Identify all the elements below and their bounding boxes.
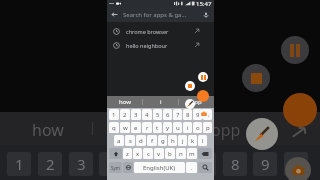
button[interactable]: y	[163, 122, 172, 133]
staticText: s	[129, 137, 132, 145]
staticText: 4	[107, 154, 116, 174]
staticText: j	[182, 137, 184, 145]
button[interactable]: Record	[197, 90, 209, 102]
button[interactable]: how	[107, 96, 142, 108]
staticText: 9	[261, 154, 270, 174]
button[interactable]: c	[143, 148, 153, 159]
button[interactable]: r	[142, 122, 152, 133]
staticText: 4	[145, 111, 149, 119]
staticText: 8	[231, 154, 240, 174]
button[interactable]: w	[120, 122, 130, 133]
staticText: Search for apps & ga...	[123, 11, 187, 19]
button[interactable]: l	[198, 135, 207, 146]
button[interactable]: Stop recording	[185, 81, 195, 91]
staticText: 0	[292, 154, 301, 174]
button[interactable]: Search	[198, 162, 212, 173]
staticText: 7	[176, 111, 180, 119]
button[interactable]: 0	[203, 109, 212, 120]
button[interactable]: f	[147, 135, 157, 146]
button[interactable]: 6	[163, 109, 172, 120]
button[interactable]: h	[168, 135, 177, 146]
button[interactable]: .	[186, 162, 197, 173]
staticText: b	[168, 150, 172, 158]
button[interactable]: x	[133, 148, 142, 159]
button[interactable]: Sym	[109, 162, 122, 173]
staticText: i	[160, 98, 162, 106]
staticText: n	[179, 150, 183, 158]
staticText: 7	[200, 154, 209, 174]
button[interactable]: 1	[109, 109, 119, 120]
button[interactable]: 4	[142, 109, 152, 120]
staticText: a	[117, 137, 121, 145]
button[interactable]: n	[176, 148, 186, 159]
button[interactable]: e	[131, 122, 141, 133]
staticText: t	[156, 124, 159, 132]
button[interactable]: 3	[131, 109, 141, 120]
staticText: v	[157, 150, 161, 158]
button[interactable]: app	[179, 96, 214, 108]
button[interactable]: u	[173, 122, 182, 133]
staticText: 5	[156, 111, 160, 119]
staticText: 6	[169, 154, 178, 174]
button[interactable]: t	[153, 122, 162, 133]
button[interactable]: 7	[173, 109, 182, 120]
button[interactable]: d	[136, 135, 146, 146]
button[interactable]: j	[178, 135, 187, 146]
other: Search	[202, 164, 209, 171]
staticText: 2	[46, 154, 55, 174]
button[interactable]: g	[158, 135, 167, 146]
staticText: q	[112, 124, 116, 132]
button[interactable]: Pause recording	[198, 72, 208, 82]
button[interactable]: hello neighbour	[107, 38, 214, 52]
staticText: .	[191, 164, 193, 172]
button[interactable]: p	[203, 122, 212, 133]
button[interactable]: z	[123, 148, 132, 159]
button[interactable]: Screenshot	[199, 109, 209, 119]
other: Back	[111, 11, 118, 18]
staticText: app	[191, 98, 202, 106]
button[interactable]: Backspace	[198, 148, 212, 159]
staticText: 2	[123, 111, 127, 119]
button[interactable]: v	[154, 148, 164, 159]
button[interactable]: m	[187, 148, 197, 159]
button[interactable]: Back	[107, 7, 214, 22]
staticText: 9	[196, 111, 200, 119]
button[interactable]: Draw	[185, 99, 195, 109]
staticText: o	[196, 124, 200, 132]
staticText: 6	[166, 111, 170, 119]
button[interactable]: a	[114, 135, 124, 146]
staticText: p	[206, 124, 210, 132]
staticText: 1	[15, 154, 24, 174]
staticText: c	[147, 150, 150, 158]
staticText: how	[32, 119, 64, 141]
button[interactable]: Shift	[109, 148, 122, 159]
other: Change language	[126, 165, 131, 170]
staticText: 5	[138, 154, 147, 174]
staticText: English(UK)	[143, 164, 176, 172]
staticText: i	[187, 124, 189, 132]
button[interactable]: i	[143, 96, 178, 108]
button[interactable]: 5	[153, 109, 162, 120]
button[interactable]: q	[109, 122, 119, 133]
staticText: e	[134, 124, 138, 132]
staticText: opp	[211, 119, 241, 141]
button[interactable]: k	[188, 135, 197, 146]
staticText: how	[119, 98, 131, 106]
button[interactable]: Change language	[123, 162, 133, 173]
staticText: k	[191, 137, 195, 145]
button[interactable]: English(UK)	[134, 162, 185, 173]
button[interactable]: o	[193, 122, 202, 133]
button[interactable]: s	[125, 135, 135, 146]
button[interactable]: i	[183, 122, 192, 133]
button[interactable]: b	[165, 148, 175, 159]
staticText: 1	[112, 111, 116, 119]
button[interactable]: chrome browser	[107, 24, 214, 38]
button[interactable]: 2	[120, 109, 130, 120]
staticText: 8	[186, 111, 190, 119]
staticText: 3	[134, 111, 138, 119]
button[interactable]: 9	[193, 109, 202, 120]
staticText: y	[166, 124, 170, 132]
staticText: 15:47	[196, 0, 212, 7]
staticText: l	[202, 137, 204, 145]
button[interactable]: 8	[183, 109, 192, 120]
